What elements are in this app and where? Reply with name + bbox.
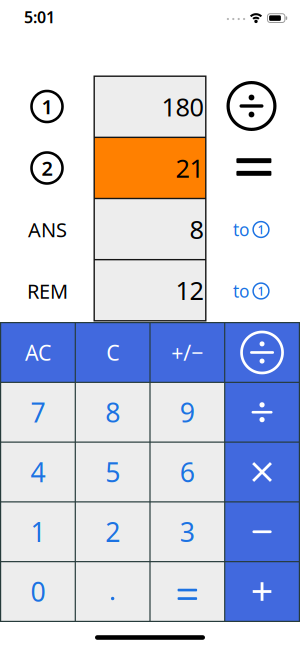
- staticText: 5:01: [24, 6, 55, 28]
- staticText: ANS: [28, 216, 67, 243]
- staticText: 4: [30, 454, 45, 490]
- staticText: AC: [25, 338, 51, 367]
- button[interactable]: Send to field 1: [233, 279, 269, 302]
- button[interactable]: 180: [95, 77, 205, 137]
- button[interactable]: Plus: [225, 562, 299, 621]
- button[interactable]: 3: [151, 502, 224, 561]
- button[interactable]: Decimal point: [76, 562, 149, 621]
- button[interactable]: 9: [151, 383, 224, 442]
- button[interactable]: 7: [1, 383, 75, 442]
- staticText: 9: [180, 394, 195, 430]
- button[interactable]: 6: [151, 443, 224, 501]
- button[interactable]: +/−: [151, 323, 224, 382]
- button[interactable]: Divide: [225, 383, 299, 442]
- staticText: 12: [176, 273, 204, 307]
- staticText: 2: [105, 514, 120, 549]
- staticText: 180: [162, 90, 204, 124]
- button[interactable]: 8: [76, 383, 149, 442]
- button[interactable]: Divide with remainder: [225, 323, 299, 382]
- button[interactable]: 5: [76, 443, 149, 501]
- button[interactable]: 1: [1, 502, 75, 561]
- button[interactable]: 4: [1, 443, 75, 501]
- staticText: 6: [180, 454, 195, 490]
- button[interactable]: Minus: [225, 502, 299, 561]
- button[interactable]: Division operation: [226, 81, 276, 131]
- staticText: 2: [41, 155, 52, 181]
- staticText: 8: [190, 212, 204, 246]
- staticText: 7: [30, 394, 45, 430]
- button[interactable]: 21: [95, 138, 205, 198]
- staticText: 1: [257, 283, 264, 299]
- staticText: 5: [105, 454, 120, 490]
- staticText: 21: [176, 151, 204, 185]
- staticText: 1: [41, 93, 52, 120]
- button[interactable]: Equals: [234, 154, 274, 180]
- button[interactable]: 0: [1, 562, 75, 621]
- staticText: 8: [105, 394, 120, 430]
- staticText: +/−: [171, 338, 203, 367]
- button[interactable]: AC: [1, 323, 75, 382]
- button[interactable]: C: [76, 323, 149, 382]
- staticText: to: [233, 279, 249, 302]
- staticText: 1: [257, 221, 264, 237]
- staticText: 3: [180, 514, 195, 549]
- button[interactable]: Multiply: [225, 443, 299, 501]
- staticText: to: [233, 218, 249, 241]
- button[interactable]: Send to field 1: [233, 218, 269, 241]
- staticText: 1: [30, 514, 45, 549]
- button[interactable]: Equals: [151, 562, 224, 621]
- staticText: REM: [27, 278, 68, 304]
- staticText: C: [106, 338, 119, 367]
- button[interactable]: 2: [76, 502, 149, 561]
- staticText: 0: [30, 574, 45, 609]
